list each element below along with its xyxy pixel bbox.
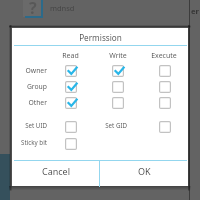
staticText: Other (28, 98, 47, 107)
button[interactable]: Toggle permission (61, 61, 81, 81)
button[interactable]: Toggle permission (108, 93, 128, 113)
staticText: mdnsd (50, 3, 75, 13)
staticText: Set UID (25, 121, 47, 129)
staticText: ? (29, 0, 37, 15)
staticText: Owner (25, 66, 47, 75)
button[interactable]: Toggle permission (155, 61, 175, 81)
button[interactable]: Toggle permission (155, 77, 175, 97)
staticText: Sticky bit (21, 138, 47, 146)
staticText: Permission (79, 32, 122, 43)
button[interactable]: OK (100, 161, 188, 186)
staticText: Execute (151, 51, 177, 61)
button[interactable]: Toggle permission (155, 117, 175, 137)
staticText: er (191, 6, 199, 16)
staticText: Cancel (42, 165, 71, 177)
button[interactable]: Toggle permission (61, 77, 81, 97)
button[interactable]: Toggle permission (61, 93, 81, 113)
staticText: Read (62, 51, 79, 61)
button[interactable]: Toggle permission (61, 117, 81, 137)
staticText: Set GID (105, 121, 127, 129)
button[interactable]: Cancel (12, 161, 100, 186)
staticText: Write (109, 51, 127, 61)
staticText: OK (138, 165, 151, 177)
button[interactable]: Toggle permission (155, 93, 175, 113)
button[interactable]: Toggle permission (61, 134, 81, 154)
button[interactable]: Toggle permission (108, 61, 128, 81)
button[interactable]: Toggle permission (108, 77, 128, 97)
staticText: Group (26, 82, 47, 91)
